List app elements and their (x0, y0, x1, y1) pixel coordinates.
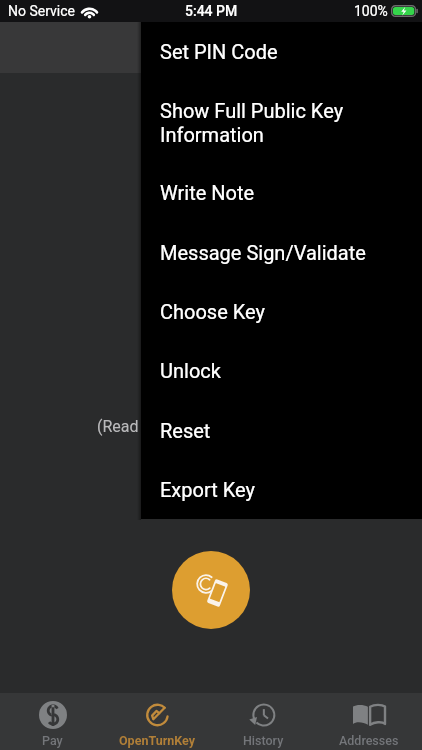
staticText: 100% (354, 3, 388, 19)
staticText: Unlock (160, 359, 221, 382)
button[interactable]: Set PIN Code (141, 40, 422, 65)
button[interactable]: Unlock (141, 359, 422, 384)
staticText: OpenTurnKey (119, 733, 196, 748)
button[interactable]: History (210, 693, 316, 750)
button[interactable]: Choose Key (141, 300, 422, 325)
button[interactable]: Write Note (141, 181, 422, 206)
button[interactable]: Reset (141, 419, 422, 444)
staticText: Choose Key (160, 300, 265, 323)
staticText: History (243, 733, 284, 748)
button[interactable]: Read NFC key (172, 551, 250, 629)
button[interactable]: Addresses (316, 693, 422, 750)
button[interactable]: Show Full Public Key Information (141, 99, 422, 147)
staticText: (Read an OpenTurnKey first) (97, 417, 297, 436)
staticText: Show Full Public Key Information (160, 99, 344, 147)
button[interactable]: Export Key (141, 478, 422, 503)
staticText: Addresses (339, 733, 399, 748)
staticText: Write Note (160, 181, 255, 204)
staticText: 5:44 PM (185, 3, 238, 19)
staticText: Set PIN Code (160, 40, 278, 63)
button[interactable]: Pay (0, 693, 105, 750)
staticText: Export Key (160, 478, 255, 501)
staticText: No Service (8, 3, 75, 19)
staticText: Message Sign/Validate (160, 241, 366, 264)
button[interactable]: OpenTurnKey (105, 693, 210, 750)
staticText: Pay (42, 733, 63, 748)
button[interactable]: Message Sign/Validate (141, 241, 422, 266)
staticText: Reset (160, 419, 211, 442)
